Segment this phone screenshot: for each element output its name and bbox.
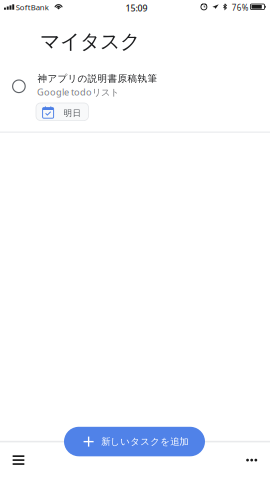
staticText: 15:09 <box>125 2 147 14</box>
staticText: 新しいタスクを追加 <box>101 436 188 447</box>
staticText: マイタスク <box>40 29 140 54</box>
button[interactable]: Menu <box>0 442 36 479</box>
staticText: SoftBank <box>16 2 49 13</box>
staticText: 76% <box>232 2 249 13</box>
button[interactable]: 新しいタスクを追加 <box>64 427 205 456</box>
staticText: 明日 <box>63 108 81 119</box>
staticText: 神アプリの説明書原稿執筆 <box>37 73 157 85</box>
button[interactable]: More options <box>234 442 270 479</box>
staticText: Google todoリスト <box>37 86 119 98</box>
button[interactable]: 神アプリの説明書原稿執筆 <box>0 68 270 130</box>
